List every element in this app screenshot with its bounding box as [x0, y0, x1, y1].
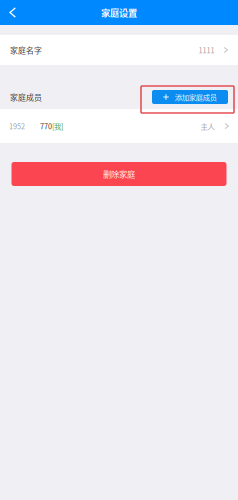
button[interactable]: Back — [0, 0, 30, 25]
button[interactable]: 1952 — [0, 109, 238, 143]
button[interactable]: 家庭名字 — [0, 35, 238, 65]
staticText: 1111 — [198, 45, 214, 55]
button[interactable]: 删除家庭 — [0, 162, 238, 186]
staticText: 家庭成员 — [10, 91, 42, 103]
staticText: 家庭设置 — [101, 6, 137, 19]
staticText: 770 — [40, 121, 52, 131]
button[interactable]: 添加家庭成员 — [152, 90, 228, 104]
staticText: 删除家庭 — [103, 168, 135, 180]
staticText: 主人 — [200, 121, 214, 131]
staticText: 1952 — [9, 121, 25, 131]
staticText: 添加家庭成员 — [175, 92, 217, 102]
staticText: [我] — [52, 121, 63, 131]
staticText: 家庭名字 — [10, 44, 42, 56]
